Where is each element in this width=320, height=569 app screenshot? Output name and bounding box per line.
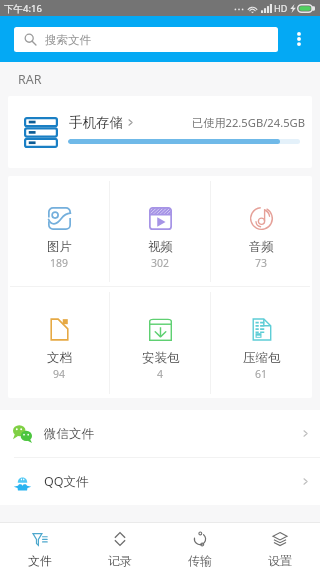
staticText: 189 xyxy=(50,256,69,270)
button[interactable]: 文档 xyxy=(8,287,110,398)
staticText: 图片 xyxy=(47,239,72,255)
staticText: RAR xyxy=(18,71,42,88)
staticText: 302 xyxy=(151,256,170,270)
staticText: QQ文件 xyxy=(44,473,89,490)
staticText: 73 xyxy=(255,256,268,270)
staticText: 搜索文件 xyxy=(45,33,91,47)
staticText: 61 xyxy=(255,367,268,381)
staticText: 已使用22.5GB/24.5GB xyxy=(192,115,305,130)
staticText: 手机存储 xyxy=(69,114,123,131)
button[interactable]: 传输 xyxy=(160,523,240,569)
staticText: 安装包 xyxy=(142,350,180,366)
staticText: 音频 xyxy=(249,239,274,255)
button[interactable]: 微信文件 xyxy=(0,410,320,457)
button[interactable]: 文件 xyxy=(0,523,80,569)
button[interactable]: More options xyxy=(278,16,320,62)
staticText: 微信文件 xyxy=(44,426,94,442)
button[interactable]: 搜索文件 xyxy=(14,27,278,52)
button[interactable]: 视频 xyxy=(110,176,211,286)
staticText: 文件 xyxy=(28,553,52,568)
button[interactable]: QQ文件 xyxy=(0,458,320,505)
staticText: 4 xyxy=(157,367,164,381)
button[interactable]: 安装包 xyxy=(110,287,211,398)
staticText: 视频 xyxy=(148,239,173,255)
button[interactable]: 图片 xyxy=(8,176,110,286)
staticText: 文档 xyxy=(47,350,72,366)
button[interactable]: 压缩包 xyxy=(211,287,312,398)
staticText: 记录 xyxy=(108,553,132,568)
staticText: 设置 xyxy=(268,553,292,568)
staticText: 传输 xyxy=(188,553,212,568)
button[interactable]: 手机存储 xyxy=(8,96,312,168)
staticText: 压缩包 xyxy=(243,350,281,366)
staticText: 下午4:16 xyxy=(4,2,42,15)
button[interactable]: 记录 xyxy=(80,523,160,569)
staticText: 94 xyxy=(53,367,66,381)
button[interactable]: 音频 xyxy=(211,176,312,286)
staticText: HD xyxy=(274,2,288,14)
button[interactable]: 设置 xyxy=(240,523,320,569)
